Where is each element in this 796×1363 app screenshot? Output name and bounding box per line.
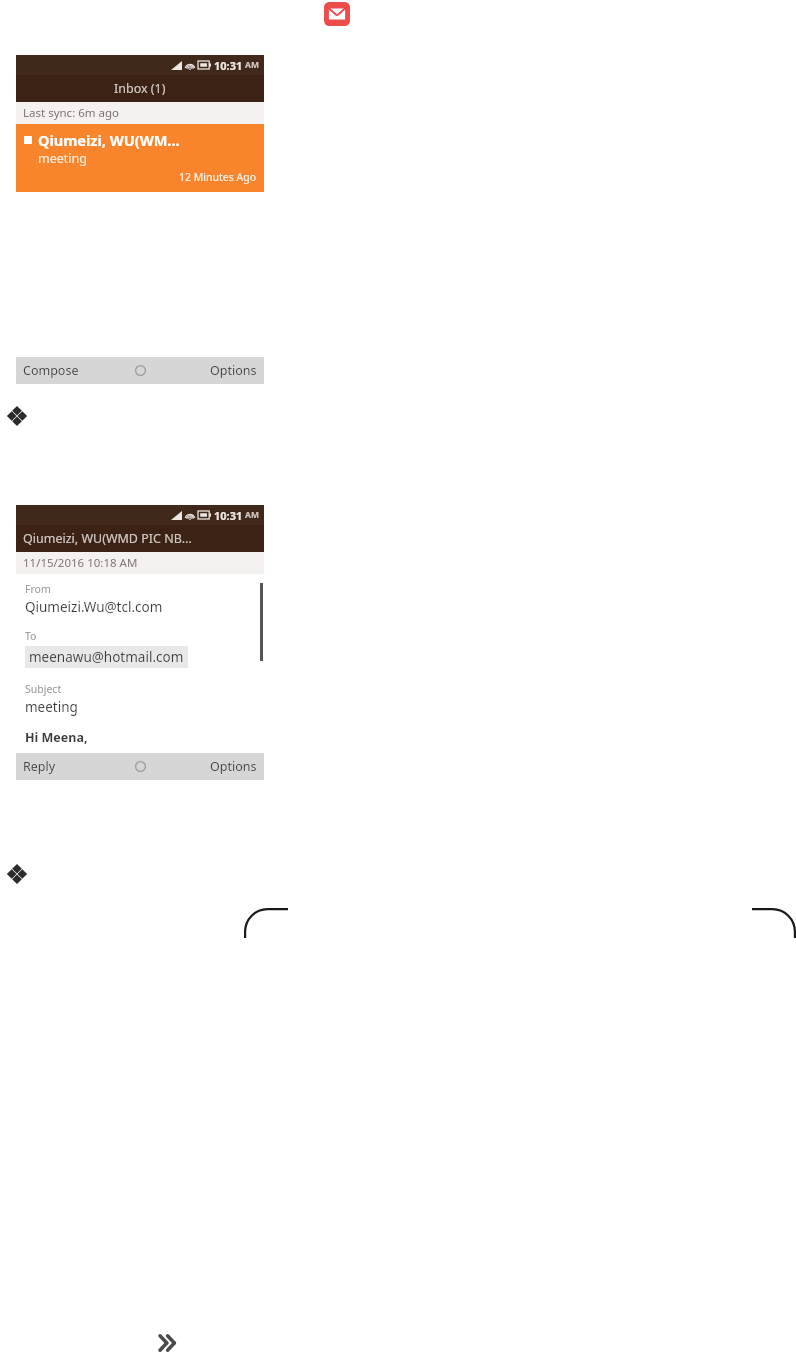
button[interactable]: Select	[127, 753, 154, 780]
button[interactable]: Compose	[16, 357, 86, 384]
staticText: AM	[245, 59, 259, 71]
staticText: From	[25, 582, 51, 596]
button[interactable]: Options	[203, 753, 264, 780]
staticText: Last sync: 6m ago	[23, 105, 120, 121]
staticText: Subject	[25, 682, 62, 696]
staticText: Hi Meena,	[25, 729, 88, 746]
staticText: Compose	[23, 362, 79, 379]
staticText: 10:31	[214, 58, 243, 73]
staticText: Qiumeizi, WU(WM...	[38, 130, 180, 150]
staticText: Inbox (1)	[114, 80, 166, 97]
staticText: AM	[245, 509, 259, 521]
staticText: meenawu@hotmail.com	[29, 648, 184, 666]
staticText: 11/15/2016 10:18 AM	[23, 555, 138, 571]
staticText: Qiumeizi, WU(WMD PIC NB...	[23, 530, 192, 547]
staticText: meeting	[25, 698, 78, 716]
staticText: Options	[210, 362, 257, 379]
button[interactable]: Select	[127, 357, 154, 384]
staticText: Options	[210, 758, 257, 775]
staticText: To	[25, 629, 37, 643]
button[interactable]: Options	[203, 357, 264, 384]
staticText: Reply	[23, 758, 56, 775]
staticText: Qiumeizi.Wu@tcl.com	[25, 598, 163, 616]
button[interactable]: meenawu@hotmail.com	[29, 648, 184, 666]
staticText: meeting	[38, 150, 87, 167]
button[interactable]: Reply	[16, 753, 63, 780]
staticText: 12 Minutes Ago	[16, 170, 256, 184]
button[interactable]: Email	[324, 2, 350, 26]
button[interactable]: Qiumeizi, WU(WM...	[16, 124, 264, 192]
staticText: 10:31	[214, 508, 243, 523]
